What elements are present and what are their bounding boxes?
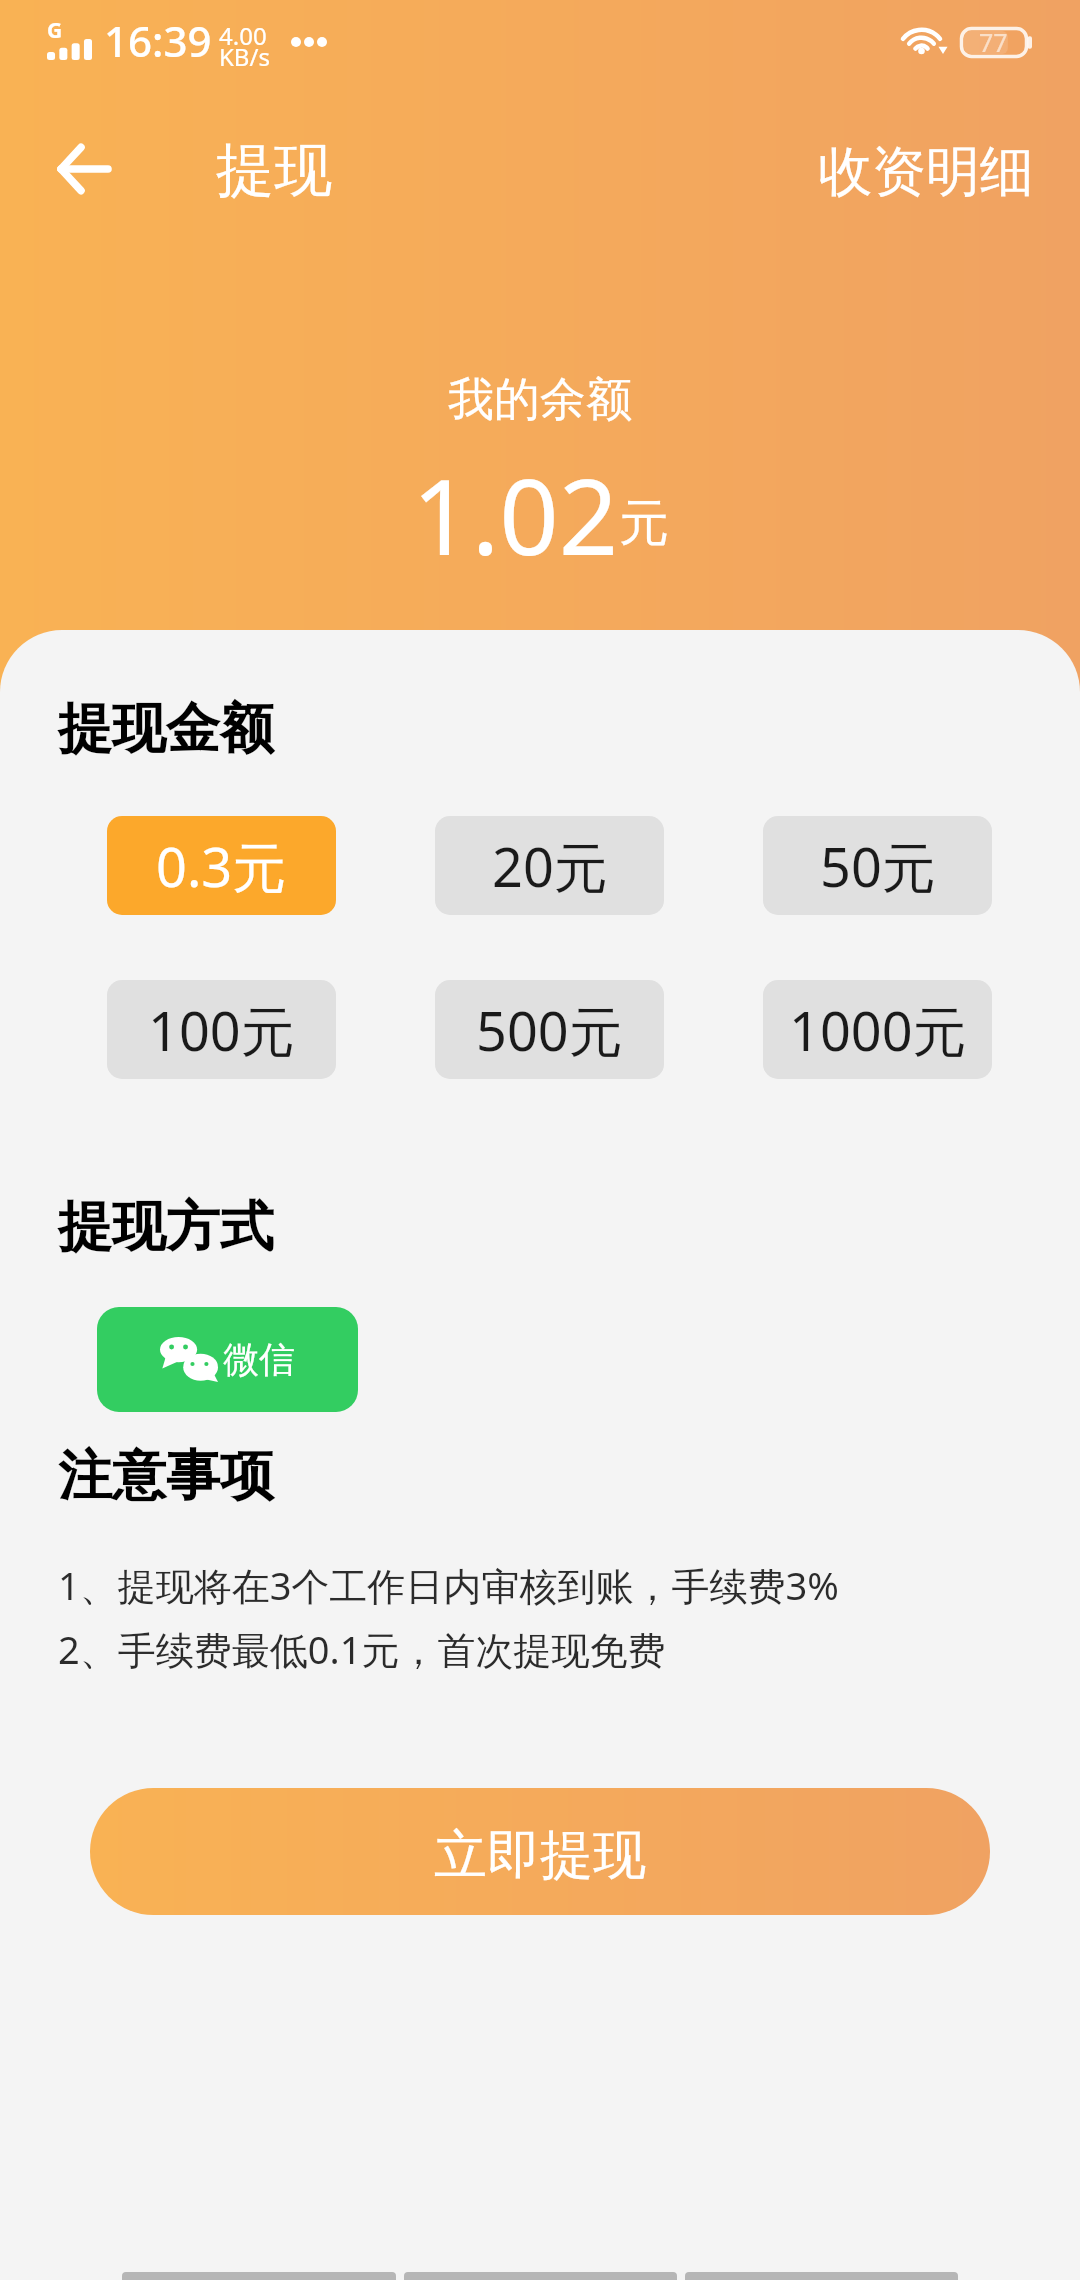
staticText: 20元 — [492, 829, 608, 903]
button[interactable]: 50元 — [763, 816, 992, 915]
button[interactable]: 0.3元 — [107, 816, 336, 915]
button[interactable]: 立即提现 — [90, 1788, 990, 1915]
staticText: 元 — [619, 492, 669, 555]
staticText: KB/s — [219, 40, 270, 73]
staticText: 4.00 — [219, 19, 267, 52]
staticText: 16:39 — [104, 12, 212, 69]
staticText: G — [47, 16, 63, 45]
staticText: 微信 — [223, 1337, 295, 1382]
button[interactable]: 1000元 — [763, 980, 992, 1079]
staticText: 1.02 — [412, 444, 619, 586]
button[interactable]: 收资明细 — [808, 130, 1044, 214]
staticText: 0.3元 — [156, 829, 287, 903]
staticText: 2、手续费最低0.1元，首次提现免费 — [58, 1623, 666, 1675]
button[interactable]: 500元 — [435, 980, 664, 1079]
button[interactable]: Back — [34, 119, 134, 219]
staticText: 我的余额 — [448, 371, 632, 429]
staticText: 提现金额 — [58, 695, 274, 763]
staticText: 提现方式 — [58, 1193, 274, 1261]
staticText: 提现 — [216, 134, 332, 207]
staticText: 1000元 — [789, 993, 967, 1067]
staticText: 收资明细 — [818, 138, 1034, 206]
staticText: 500元 — [476, 993, 623, 1067]
staticText: 100元 — [148, 993, 295, 1067]
button[interactable]: 100元 — [107, 980, 336, 1079]
staticText: 注意事项 — [58, 1442, 274, 1510]
staticText: 77 — [979, 25, 1008, 59]
button[interactable]: 微信 — [97, 1307, 358, 1412]
button[interactable]: 20元 — [435, 816, 664, 915]
staticText: 立即提现 — [434, 1822, 646, 1889]
staticText: 50元 — [820, 829, 936, 903]
staticText: 1、提现将在3个工作日内审核到账，手续费3% — [58, 1559, 839, 1611]
